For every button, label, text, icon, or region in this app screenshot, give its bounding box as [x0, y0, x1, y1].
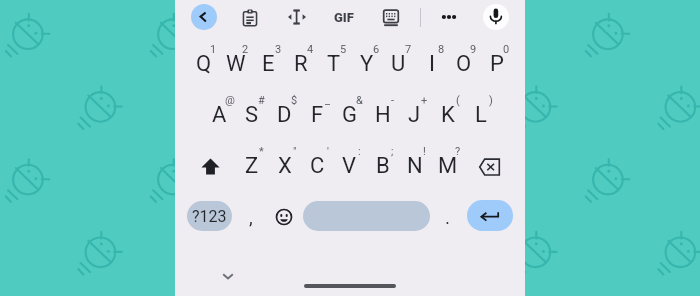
- staticText: Q: [196, 51, 212, 77]
- staticText: #: [258, 94, 265, 107]
- button[interactable]: P: [480, 37, 513, 88]
- staticText: (: [456, 94, 460, 107]
- button[interactable]: Shift: [186, 139, 235, 190]
- button[interactable]: Clipboard: [237, 4, 263, 30]
- button[interactable]: K: [431, 88, 464, 139]
- staticText: U: [391, 51, 406, 77]
- button[interactable]: A: [203, 88, 236, 139]
- staticText: D: [277, 102, 292, 128]
- button[interactable]: I: [415, 37, 448, 88]
- button[interactable]: Keyboard settings: [378, 4, 404, 30]
- button[interactable]: H: [366, 88, 399, 139]
- button[interactable]: S: [235, 88, 268, 139]
- button[interactable]: V: [333, 139, 366, 190]
- staticText: P: [490, 51, 504, 77]
- button[interactable]: B: [366, 139, 399, 190]
- button[interactable]: Enter: [467, 200, 513, 231]
- button[interactable]: R: [284, 37, 317, 88]
- staticText: S: [245, 102, 259, 128]
- staticText: E: [262, 51, 275, 77]
- button[interactable]: ?123: [187, 201, 232, 231]
- button[interactable]: GIF: [331, 4, 357, 30]
- staticText: X: [278, 153, 292, 179]
- staticText: K: [441, 102, 455, 128]
- staticText: J: [408, 102, 421, 128]
- staticText: 9: [470, 43, 477, 56]
- staticText: 8: [438, 43, 445, 56]
- button[interactable]: W: [219, 37, 252, 88]
- staticText: R: [294, 51, 308, 77]
- staticText: 6: [373, 43, 380, 56]
- staticText: :: [358, 145, 361, 158]
- button[interactable]: N: [398, 139, 431, 190]
- staticText: A: [212, 102, 227, 128]
- button[interactable]: .: [432, 201, 464, 231]
- staticText: V: [342, 153, 357, 179]
- staticText: 7: [405, 43, 412, 56]
- staticText: O: [456, 51, 472, 77]
- staticText: 3: [275, 43, 282, 56]
- button[interactable]: U: [382, 37, 415, 88]
- staticText: L: [475, 102, 487, 128]
- staticText: !: [423, 145, 426, 158]
- button[interactable]: T: [317, 37, 350, 88]
- button[interactable]: X: [268, 139, 301, 190]
- button[interactable]: G: [333, 88, 366, 139]
- button[interactable]: Move cursor: [284, 4, 310, 30]
- button[interactable]: E: [252, 37, 285, 88]
- staticText: I: [429, 51, 435, 77]
- button[interactable]: Hide keyboard: [215, 263, 241, 289]
- staticText: _: [325, 94, 330, 107]
- button[interactable]: More options: [436, 4, 462, 30]
- staticText: F: [311, 102, 324, 128]
- staticText: 4: [307, 43, 314, 56]
- button[interactable]: J: [398, 88, 431, 139]
- button[interactable]: Q: [187, 37, 220, 88]
- button[interactable]: Back: [191, 4, 217, 30]
- button[interactable]: Y: [350, 37, 383, 88]
- staticText: 5: [340, 43, 347, 56]
- button[interactable]: Space: [303, 201, 430, 231]
- staticText: .: [445, 206, 451, 228]
- staticText: &: [356, 94, 363, 107]
- staticText: GIF: [334, 10, 354, 25]
- button[interactable]: L: [464, 88, 497, 139]
- staticText: ): [489, 94, 493, 107]
- staticText: *: [259, 145, 264, 158]
- staticText: G: [342, 102, 357, 128]
- staticText: B: [376, 153, 390, 179]
- staticText: +: [421, 94, 428, 107]
- staticText: $: [291, 94, 298, 107]
- staticText: -: [391, 94, 395, 107]
- staticText: 0: [503, 43, 510, 56]
- button[interactable]: O: [447, 37, 480, 88]
- staticText: Z: [245, 153, 259, 179]
- staticText: @: [225, 94, 235, 107]
- staticText: H: [375, 102, 391, 128]
- button[interactable]: Backspace: [465, 139, 514, 190]
- staticText: ': [327, 145, 329, 158]
- staticText: ": [293, 145, 297, 158]
- button[interactable]: F: [301, 88, 334, 139]
- button[interactable]: Z: [235, 139, 268, 190]
- button[interactable]: C: [301, 139, 334, 190]
- button[interactable]: D: [268, 88, 301, 139]
- staticText: Y: [360, 51, 374, 77]
- staticText: T: [327, 51, 341, 77]
- staticText: ?: [455, 145, 461, 158]
- staticText: ,: [249, 206, 253, 228]
- staticText: M: [438, 153, 458, 179]
- button[interactable]: Emoji: [268, 201, 300, 231]
- staticText: ;: [391, 145, 394, 158]
- staticText: ?123: [192, 207, 227, 226]
- staticText: W: [226, 51, 246, 77]
- button[interactable]: M: [431, 139, 464, 190]
- button[interactable]: Voice input: [483, 4, 509, 30]
- staticText: 2: [242, 43, 249, 56]
- staticText: C: [310, 153, 325, 179]
- button[interactable]: ,: [235, 201, 267, 231]
- staticText: 1: [210, 43, 217, 56]
- staticText: N: [407, 153, 423, 179]
